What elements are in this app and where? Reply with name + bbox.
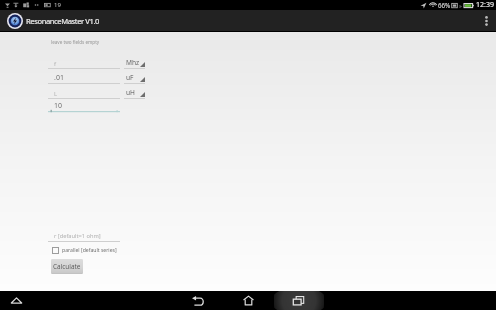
button[interactable]: More options bbox=[476, 10, 496, 31]
staticText: 19 bbox=[54, 1, 61, 9]
staticText: Mhz bbox=[126, 58, 140, 67]
staticText: 10 bbox=[54, 101, 63, 111]
staticText: leave two fields empty bbox=[51, 39, 100, 45]
button[interactable]: Recent apps bbox=[274, 291, 324, 310]
staticText: Calculate bbox=[53, 262, 81, 271]
staticText: ResonanceMaster V1.0 bbox=[26, 16, 100, 26]
staticText: uF bbox=[126, 73, 134, 82]
button[interactable]: Mhz bbox=[124, 58, 145, 69]
staticText: 66% bbox=[438, 1, 451, 9]
button[interactable]: uH bbox=[124, 88, 145, 99]
staticText: L bbox=[54, 90, 58, 98]
button[interactable]: Hide navigation bar bbox=[6, 291, 26, 310]
button[interactable]: Calculate bbox=[51, 259, 83, 274]
button[interactable]: Back bbox=[188, 291, 208, 310]
button[interactable]: parallel [default series] bbox=[52, 247, 117, 254]
button[interactable]: uF bbox=[124, 73, 145, 84]
staticText: 12:39 bbox=[476, 0, 494, 10]
staticText: .01 bbox=[54, 73, 64, 83]
staticText: f bbox=[54, 60, 56, 68]
staticText: parallel [default series] bbox=[62, 247, 117, 254]
staticText: r [default=1 ohm] bbox=[54, 232, 101, 240]
staticText: uH bbox=[126, 88, 135, 97]
staticText: » bbox=[459, 2, 462, 9]
button[interactable]: Home bbox=[238, 291, 258, 310]
